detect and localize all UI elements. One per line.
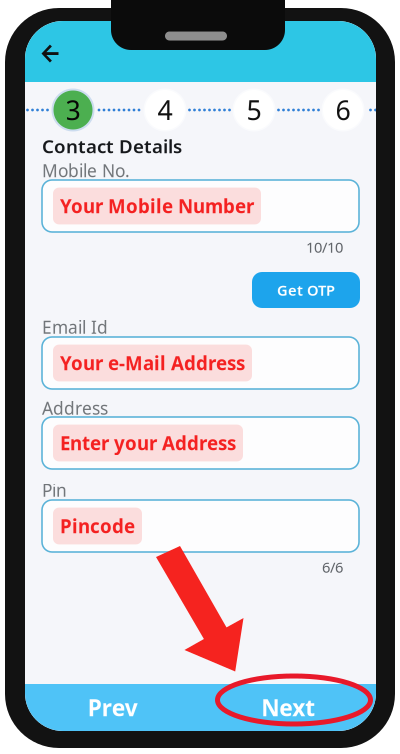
staticText: Your Mobile Number [60, 194, 254, 218]
staticText: Your e-Mail Address [60, 351, 245, 375]
button[interactable]: Back [27, 34, 73, 74]
staticText: Prev [88, 692, 138, 722]
staticText: 3 [65, 92, 80, 128]
staticText: 6/6 [322, 557, 343, 577]
staticText: Mobile No. [42, 159, 130, 182]
staticText: Pincode [60, 514, 135, 538]
button[interactable]: Prev [25, 684, 200, 731]
staticText: Contact Details [42, 134, 182, 158]
staticText: 4 [157, 92, 172, 128]
staticText: Next [261, 692, 315, 722]
staticText: Get OTP [277, 280, 335, 300]
staticText: 10/10 [306, 237, 343, 257]
staticText: 6 [335, 92, 350, 128]
staticText: Address [42, 396, 108, 419]
staticText: Email Id [42, 315, 108, 338]
button[interactable]: Next [200, 684, 376, 731]
button[interactable]: Get OTP [252, 272, 360, 308]
staticText: Pin [42, 478, 67, 501]
staticText: Enter your Address [60, 431, 236, 455]
staticText: 5 [246, 92, 261, 128]
